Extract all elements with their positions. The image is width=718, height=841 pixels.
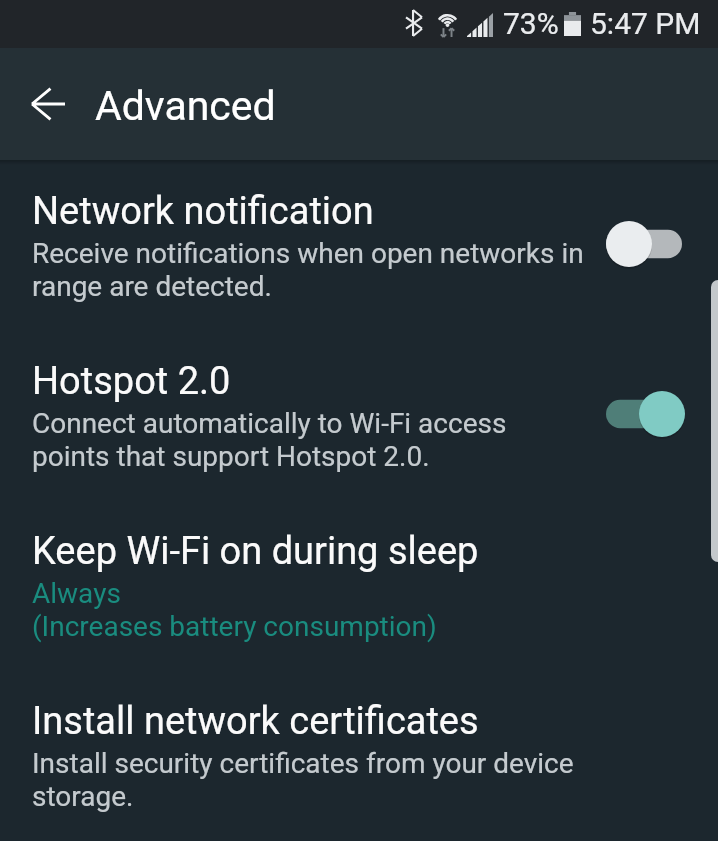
staticText: 5:47 PM: [590, 6, 701, 41]
button[interactable]: Off: [606, 221, 685, 267]
staticText: Always (Increases battery consumption): [32, 577, 437, 643]
button[interactable]: Hotspot 2.0: [0, 330, 718, 500]
staticText: Install security certificates from your …: [32, 747, 588, 813]
staticText: Connect automatically to Wi-Fi access po…: [32, 407, 588, 473]
staticText: Keep Wi-Fi on during sleep: [32, 529, 479, 574]
button[interactable]: Keep Wi-Fi on during sleep: [0, 500, 718, 670]
button[interactable]: Network notification: [0, 160, 718, 330]
button[interactable]: On: [606, 391, 685, 437]
staticText: 73%: [503, 6, 559, 41]
button[interactable]: Install network certificates: [0, 670, 718, 840]
staticText: Receive notifications when open networks…: [32, 237, 588, 303]
staticText: Hotspot 2.0: [32, 359, 231, 404]
button[interactable]: Navigate up: [16, 72, 80, 136]
staticText: Advanced: [95, 82, 276, 130]
staticText: Network notification: [32, 189, 374, 234]
staticText: Install network certificates: [32, 699, 479, 744]
